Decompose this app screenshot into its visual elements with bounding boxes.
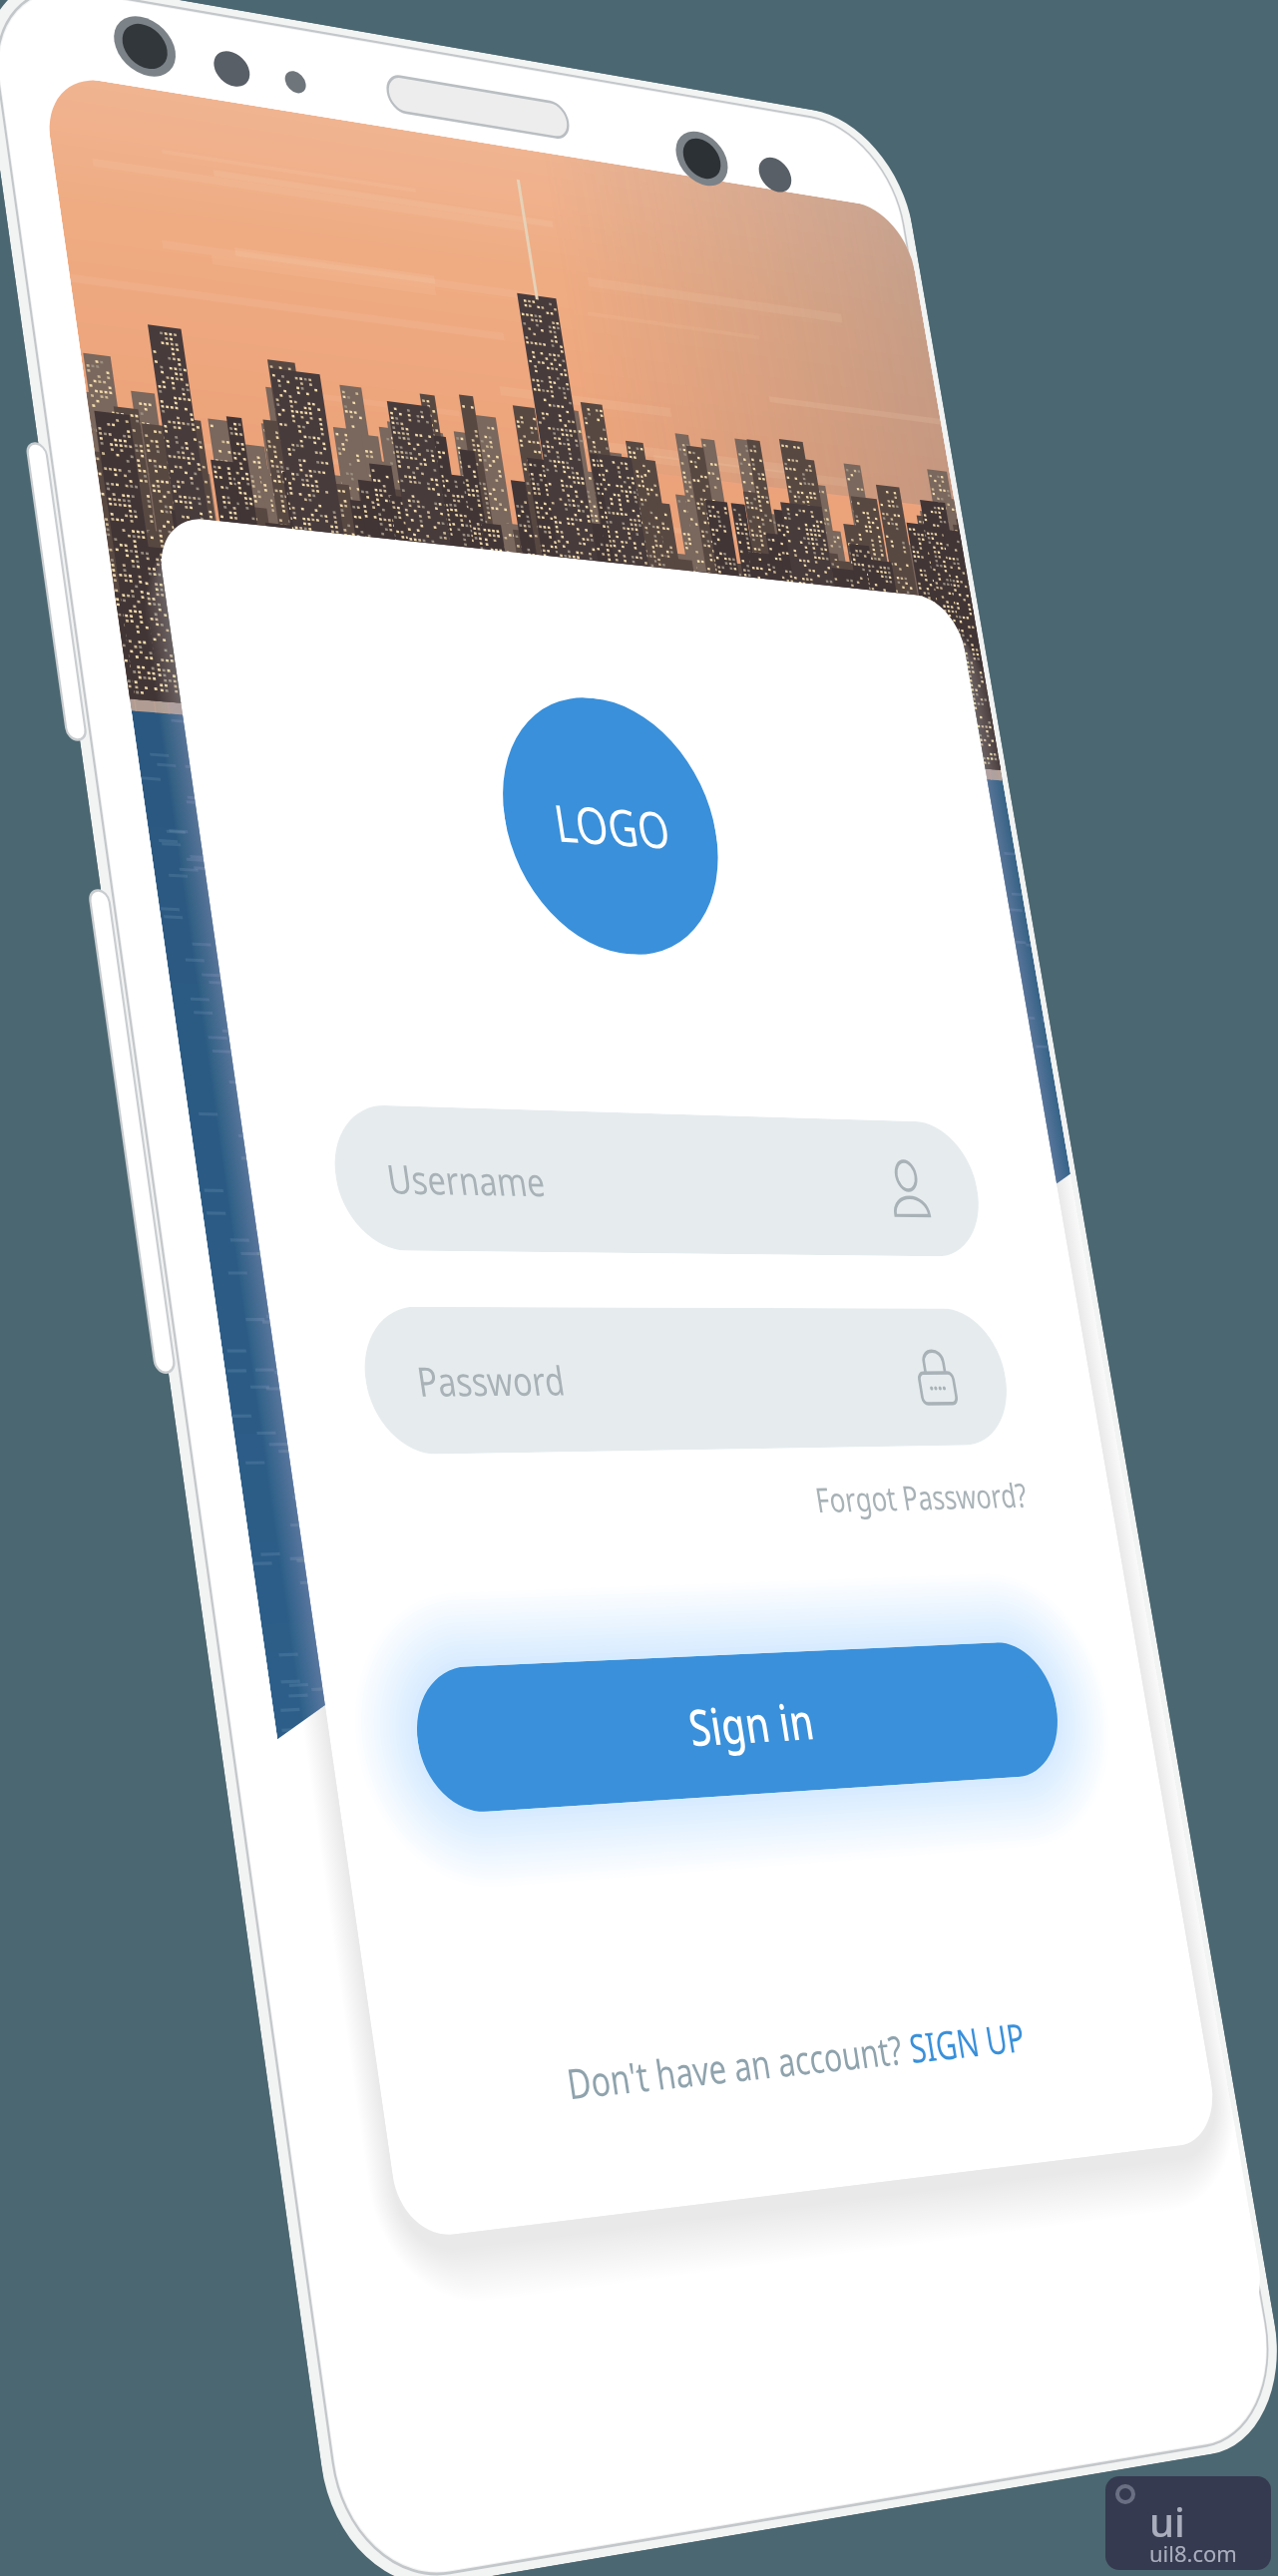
other: Account bbox=[879, 1156, 937, 1220]
button[interactable]: Username bbox=[325, 1104, 989, 1257]
staticText: Password bbox=[413, 1353, 568, 1408]
staticText: uil8.com bbox=[1149, 2538, 1237, 2568]
staticText: Sign in bbox=[684, 1687, 819, 1761]
staticText: SIGN UP bbox=[905, 2010, 1028, 2074]
staticText: Don't have an account? bbox=[563, 2021, 914, 2111]
other: Password bbox=[906, 1345, 966, 1409]
staticText: Username bbox=[383, 1151, 549, 1207]
staticText: LOGO bbox=[549, 787, 675, 864]
button[interactable]: Sign in bbox=[407, 1640, 1067, 1815]
staticText: Forgot Password? bbox=[812, 1472, 1031, 1523]
button[interactable]: Password bbox=[355, 1307, 1017, 1455]
staticText: ui bbox=[1149, 2494, 1185, 2548]
button[interactable]: Forgot Password? bbox=[756, 1466, 1032, 1532]
button[interactable]: ui bbox=[1105, 2476, 1271, 2570]
button[interactable]: LOGO bbox=[485, 689, 736, 960]
button[interactable]: Don't have an account? bbox=[562, 2002, 1050, 2116]
